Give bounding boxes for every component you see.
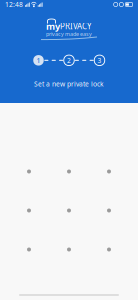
- button[interactable]: Pattern node: [16, 158, 42, 184]
- button[interactable]: Pattern node: [56, 236, 82, 262]
- button[interactable]: Pattern node: [16, 236, 42, 262]
- button[interactable]: Pattern node: [96, 236, 122, 262]
- staticText: my: [46, 20, 60, 32]
- staticText: 1: [36, 56, 40, 65]
- button[interactable]: Pattern node: [56, 197, 82, 223]
- staticText: Set a new private lock: [34, 80, 104, 88]
- button[interactable]: Step 3: [94, 55, 105, 66]
- button[interactable]: Step 2: [64, 55, 74, 66]
- staticText: 12:48: [5, 0, 23, 9]
- staticText: privacy made easy: [46, 30, 92, 37]
- staticText: 3: [97, 56, 101, 65]
- button[interactable]: Pattern node: [96, 158, 122, 184]
- button[interactable]: Pattern node: [56, 158, 82, 184]
- button[interactable]: Pattern node: [16, 197, 42, 223]
- button[interactable]: Step 1: [33, 55, 44, 66]
- staticText: 2: [67, 56, 71, 65]
- staticText: PRIVACY: [60, 21, 92, 31]
- button[interactable]: Pattern node: [96, 197, 122, 223]
